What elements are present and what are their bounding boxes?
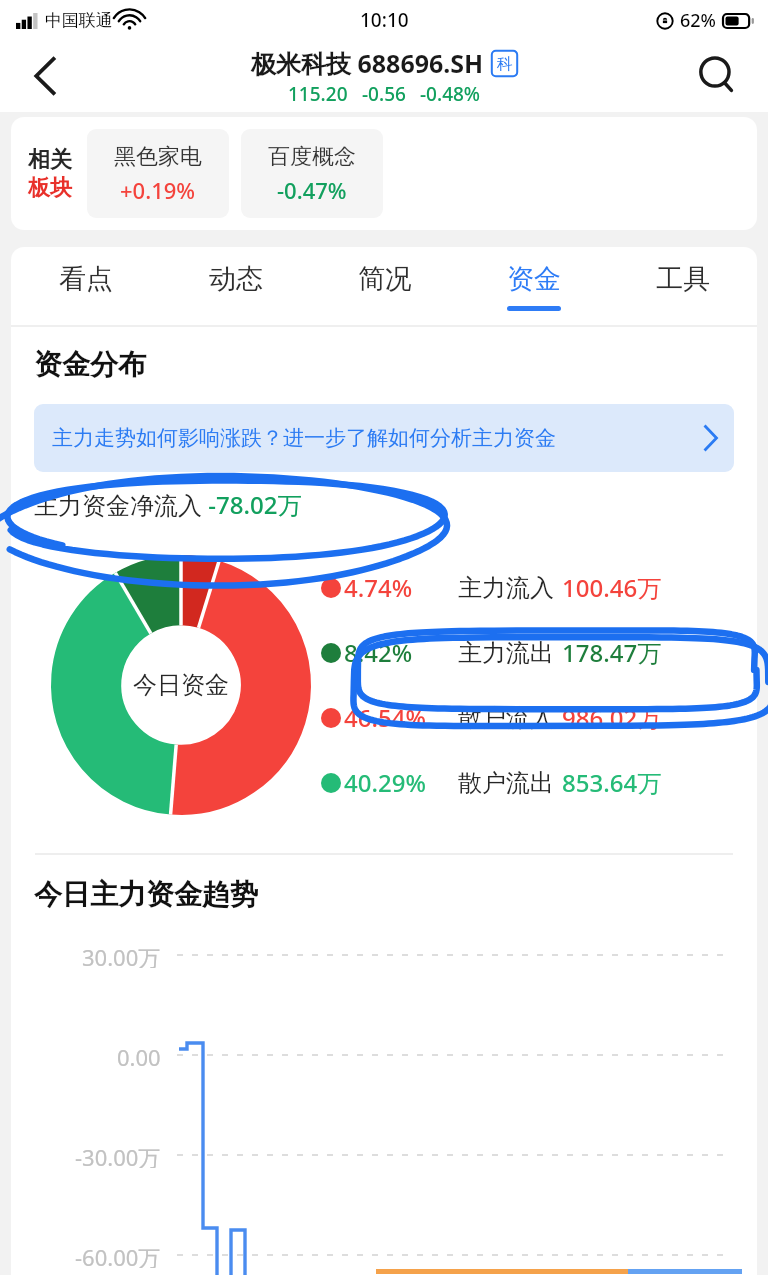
staticText: 资金 bbox=[507, 262, 561, 296]
staticText: 相关 bbox=[28, 146, 72, 174]
staticText: 30.00万 bbox=[82, 942, 161, 968]
button[interactable]: 4.74% bbox=[321, 571, 757, 604]
staticText: -0.47% bbox=[277, 175, 347, 205]
staticText: 散户流入 bbox=[458, 703, 554, 733]
staticText: -60.00万 bbox=[75, 1242, 161, 1268]
staticText: 极米科技 688696.SH bbox=[251, 46, 484, 80]
staticText: -30.00万 bbox=[75, 1142, 161, 1168]
staticText: 4.74% bbox=[344, 571, 413, 604]
staticText: 简况 bbox=[358, 262, 412, 296]
staticText: 看点 bbox=[59, 262, 113, 296]
staticText: 主力流出 bbox=[458, 638, 554, 668]
button[interactable]: 工具 bbox=[608, 247, 757, 325]
staticText: 百度概念 bbox=[268, 143, 356, 171]
staticText: 62% bbox=[680, 8, 716, 33]
staticText: -0.56 bbox=[362, 81, 406, 107]
staticText: 853.64万 bbox=[562, 766, 662, 799]
button[interactable]: 8.42% bbox=[321, 636, 757, 669]
staticText: 主力流入 bbox=[458, 573, 554, 603]
staticText: 115.20 bbox=[288, 81, 348, 107]
staticText: 178.47万 bbox=[562, 636, 662, 669]
staticText: 资金分布 bbox=[34, 347, 146, 382]
button[interactable]: 资金 bbox=[459, 247, 608, 325]
staticText: 今日主力资金趋势 bbox=[34, 877, 258, 912]
staticText: 主力走势如何影响涨跌？进一步了解如何分析主力资金 bbox=[52, 425, 699, 451]
button[interactable]: Search bbox=[688, 46, 748, 106]
button[interactable]: 动态 bbox=[161, 247, 310, 325]
button[interactable]: 看点 bbox=[11, 247, 161, 325]
staticText: 板块 bbox=[28, 174, 72, 202]
staticText: 46.54% bbox=[344, 701, 426, 734]
staticText: 10:10 bbox=[360, 7, 409, 33]
staticText: 工具 bbox=[656, 262, 710, 296]
staticText: 主力资金净流入 -78.02万 bbox=[34, 488, 302, 521]
staticText: 动态 bbox=[209, 262, 263, 296]
button[interactable]: 46.54% bbox=[321, 701, 757, 734]
staticText: 散户流出 bbox=[458, 768, 554, 798]
staticText: +0.19% bbox=[120, 175, 196, 205]
staticText: 今日资金 bbox=[133, 670, 229, 700]
staticText: 科 bbox=[497, 54, 513, 74]
staticText: 0.00 bbox=[117, 1042, 161, 1068]
button[interactable]: 简况 bbox=[310, 247, 459, 325]
staticText: 中国联通 bbox=[45, 10, 113, 31]
button[interactable]: 主力走势如何影响涨跌？进一步了解如何分析主力资金 bbox=[34, 404, 734, 472]
button[interactable]: Back bbox=[16, 47, 74, 105]
staticText: 100.46万 bbox=[562, 571, 662, 604]
staticText: 黑色家电 bbox=[114, 143, 202, 171]
button[interactable]: 百度概念 bbox=[241, 129, 383, 218]
staticText: -0.48% bbox=[420, 81, 481, 107]
staticText: 986.02万 bbox=[562, 701, 662, 734]
staticText: 8.42% bbox=[344, 636, 413, 669]
staticText: 40.29% bbox=[344, 766, 426, 799]
button[interactable]: 黑色家电 bbox=[87, 129, 229, 218]
button[interactable]: 40.29% bbox=[321, 766, 757, 799]
